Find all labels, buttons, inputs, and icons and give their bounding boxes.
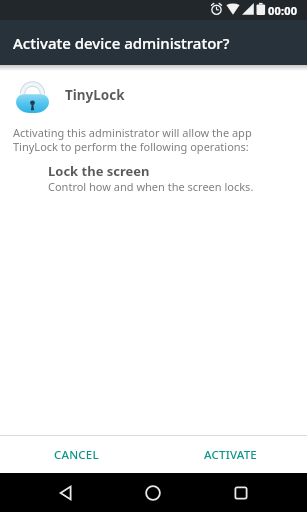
button[interactable]: CANCEL [0, 436, 153, 473]
staticText: 00:00 [268, 3, 298, 18]
button[interactable] [133, 473, 173, 512]
staticText: ACTIVATE [204, 447, 257, 463]
staticText: TinyLock [65, 86, 125, 104]
staticText: Activate device administrator? [13, 33, 230, 53]
button[interactable]: ACTIVATE [153, 436, 307, 473]
button[interactable] [221, 473, 261, 512]
staticText: Control how and when the screen locks. [48, 179, 254, 194]
staticText: TinyLock to perform the following operat… [13, 139, 249, 154]
staticText: Activating this administrator will allow… [13, 125, 252, 140]
staticText: Lock the screen [48, 162, 150, 180]
staticText: CANCEL [54, 447, 99, 463]
button[interactable] [46, 473, 86, 512]
